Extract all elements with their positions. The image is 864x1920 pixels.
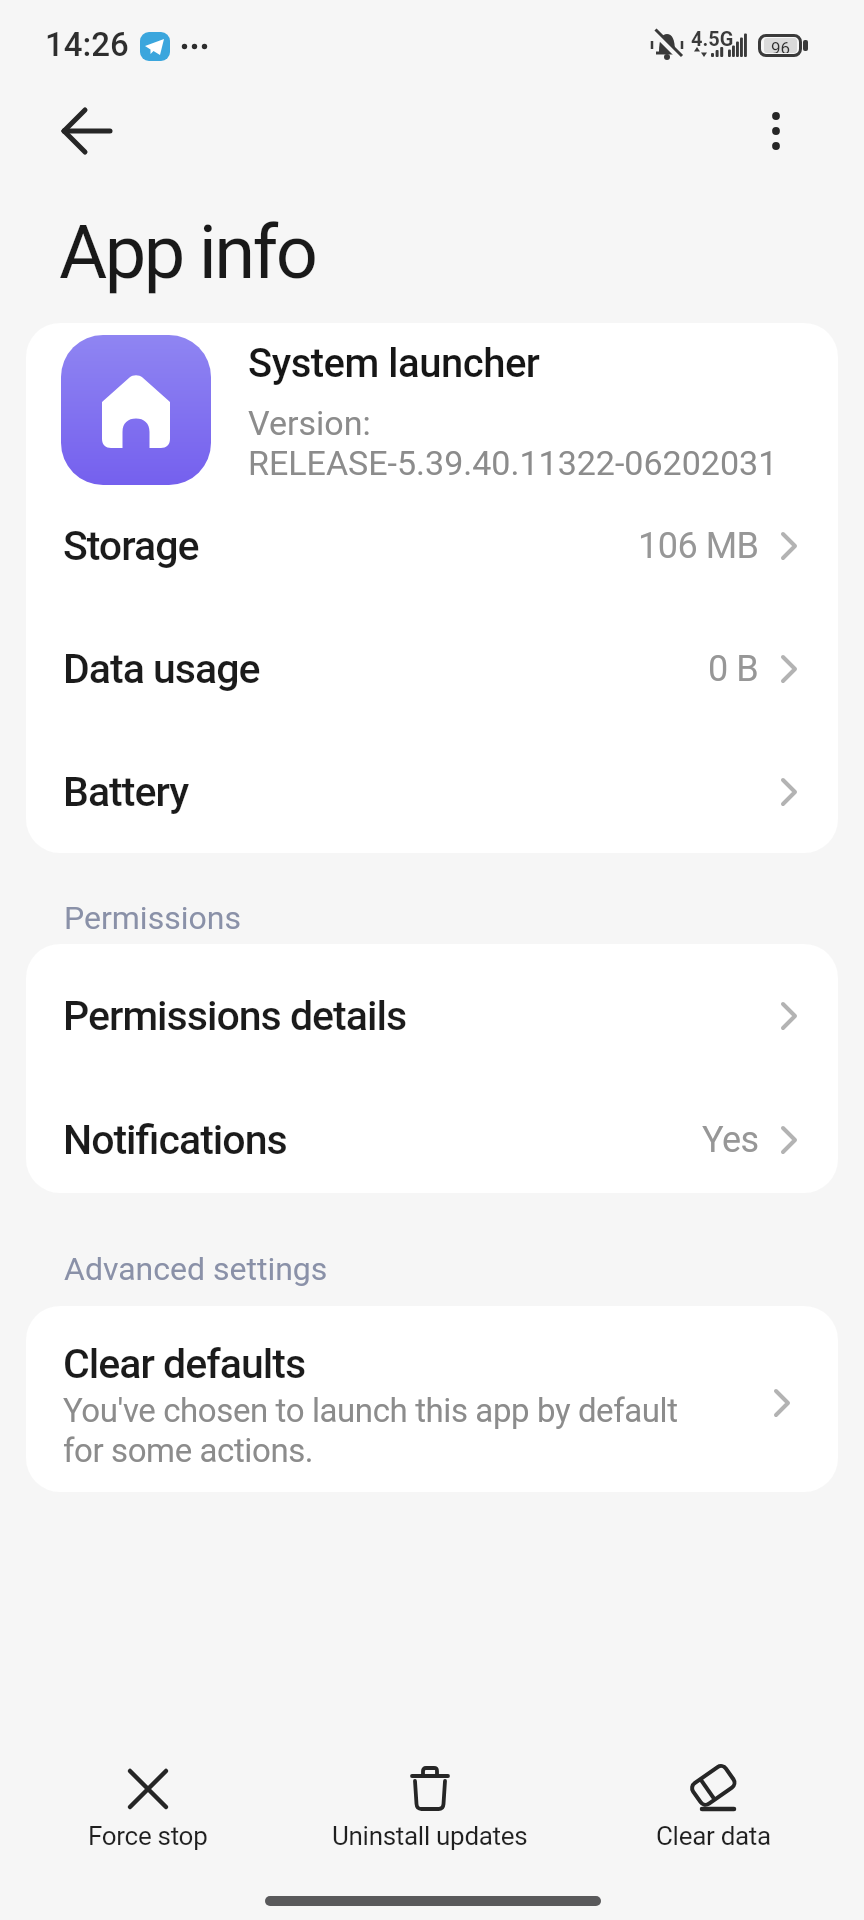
staticText: Data usage — [63, 645, 260, 693]
staticText: You've chosen to launch this app by defa… — [63, 1391, 678, 1471]
staticText: RELEASE-5.39.40.11322-06202031 — [248, 443, 778, 483]
staticText: App info — [59, 209, 316, 296]
staticText: System launcher — [248, 340, 540, 387]
button[interactable]: Clear defaults — [26, 1306, 838, 1492]
button[interactable]: Battery — [26, 730, 838, 853]
staticText: Uninstall updates — [332, 1821, 528, 1851]
staticText: Version: — [248, 403, 371, 443]
staticText: Permissions details — [63, 992, 407, 1040]
staticText: Storage — [63, 522, 199, 570]
button[interactable] — [46, 97, 122, 167]
staticText: Clear data — [656, 1821, 771, 1851]
button[interactable]: Uninstall updates — [320, 1752, 540, 1860]
button[interactable] — [748, 98, 804, 164]
staticText: Clear defaults — [63, 1340, 306, 1388]
staticText: Force stop — [88, 1821, 208, 1851]
button[interactable]: Permissions details — [26, 954, 838, 1078]
staticText: 96 — [771, 38, 791, 53]
button[interactable]: Clear data — [603, 1752, 823, 1860]
staticText: Advanced settings — [64, 1250, 328, 1288]
staticText: 0 B — [708, 648, 759, 690]
button[interactable]: Data usage — [26, 607, 838, 730]
staticText: Battery — [63, 768, 189, 816]
button[interactable]: Force stop — [38, 1752, 258, 1860]
staticText: Yes — [702, 1119, 759, 1161]
staticText: Notifications — [63, 1116, 287, 1164]
staticText: 4.5G — [691, 27, 734, 50]
staticText: Permissions — [64, 899, 241, 937]
staticText: 106 MB — [638, 525, 759, 567]
button[interactable]: Notifications — [26, 1078, 838, 1193]
button[interactable]: Storage — [26, 484, 838, 607]
staticText: 14:26 — [45, 25, 129, 64]
